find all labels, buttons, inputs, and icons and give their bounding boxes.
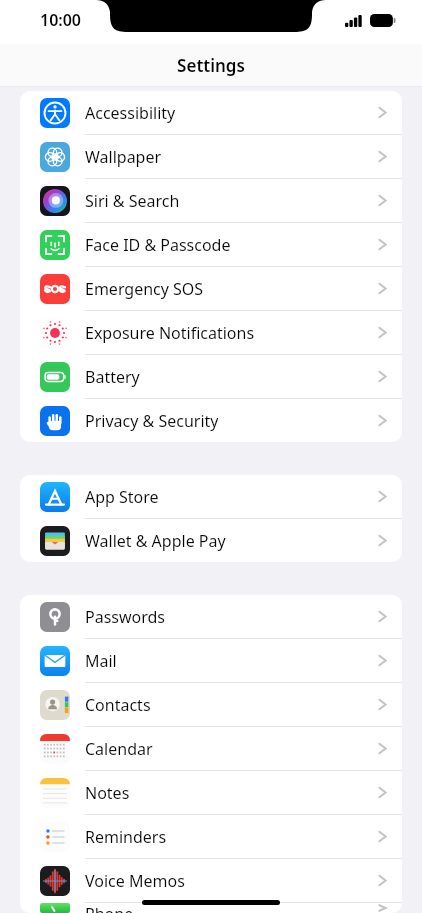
staticText: Face ID & Passcode	[85, 234, 231, 256]
button[interactable]: Wallet & Apple Pay	[20, 519, 402, 562]
staticText: Contacts	[85, 694, 151, 716]
button[interactable]: Phone	[20, 903, 402, 913]
button[interactable]: Voice Memos	[20, 859, 402, 902]
button[interactable]: Face ID & Passcode	[20, 223, 402, 266]
staticText: Reminders	[85, 826, 167, 848]
button[interactable]: Battery	[20, 355, 402, 398]
staticText: Battery	[85, 366, 140, 388]
staticText: Notes	[85, 782, 130, 804]
staticText: Voice Memos	[85, 870, 185, 892]
button[interactable]: Mail	[20, 639, 402, 682]
button[interactable]: Exposure Notifications	[20, 311, 402, 354]
button[interactable]: Emergency SOS	[20, 267, 402, 310]
button[interactable]: App Store	[20, 475, 402, 518]
staticText: Wallpaper	[85, 146, 162, 168]
button[interactable]: Notes	[20, 771, 402, 814]
button[interactable]: Accessibility	[20, 91, 402, 134]
button[interactable]: Wallpaper	[20, 135, 402, 178]
button[interactable]: Calendar	[20, 727, 402, 770]
staticText: Calendar	[85, 738, 153, 760]
button[interactable]: Passwords	[20, 595, 402, 638]
staticText: Phone	[85, 903, 134, 913]
button[interactable]: Privacy & Security	[20, 399, 402, 442]
staticText: Privacy & Security	[85, 410, 219, 432]
staticText: Passwords	[85, 606, 166, 628]
staticText: Siri & Search	[85, 190, 180, 212]
staticText: 10:00	[40, 9, 82, 31]
staticText: Mail	[85, 650, 117, 672]
button[interactable]: Siri & Search	[20, 179, 402, 222]
staticText: App Store	[85, 486, 159, 508]
button[interactable]: Contacts	[20, 683, 402, 726]
staticText: Settings	[177, 54, 245, 77]
staticText: Exposure Notifications	[85, 322, 255, 344]
staticText: Wallet & Apple Pay	[85, 530, 226, 552]
button[interactable]: Reminders	[20, 815, 402, 858]
staticText: Emergency SOS	[85, 278, 204, 300]
staticText: Accessibility	[85, 102, 176, 124]
